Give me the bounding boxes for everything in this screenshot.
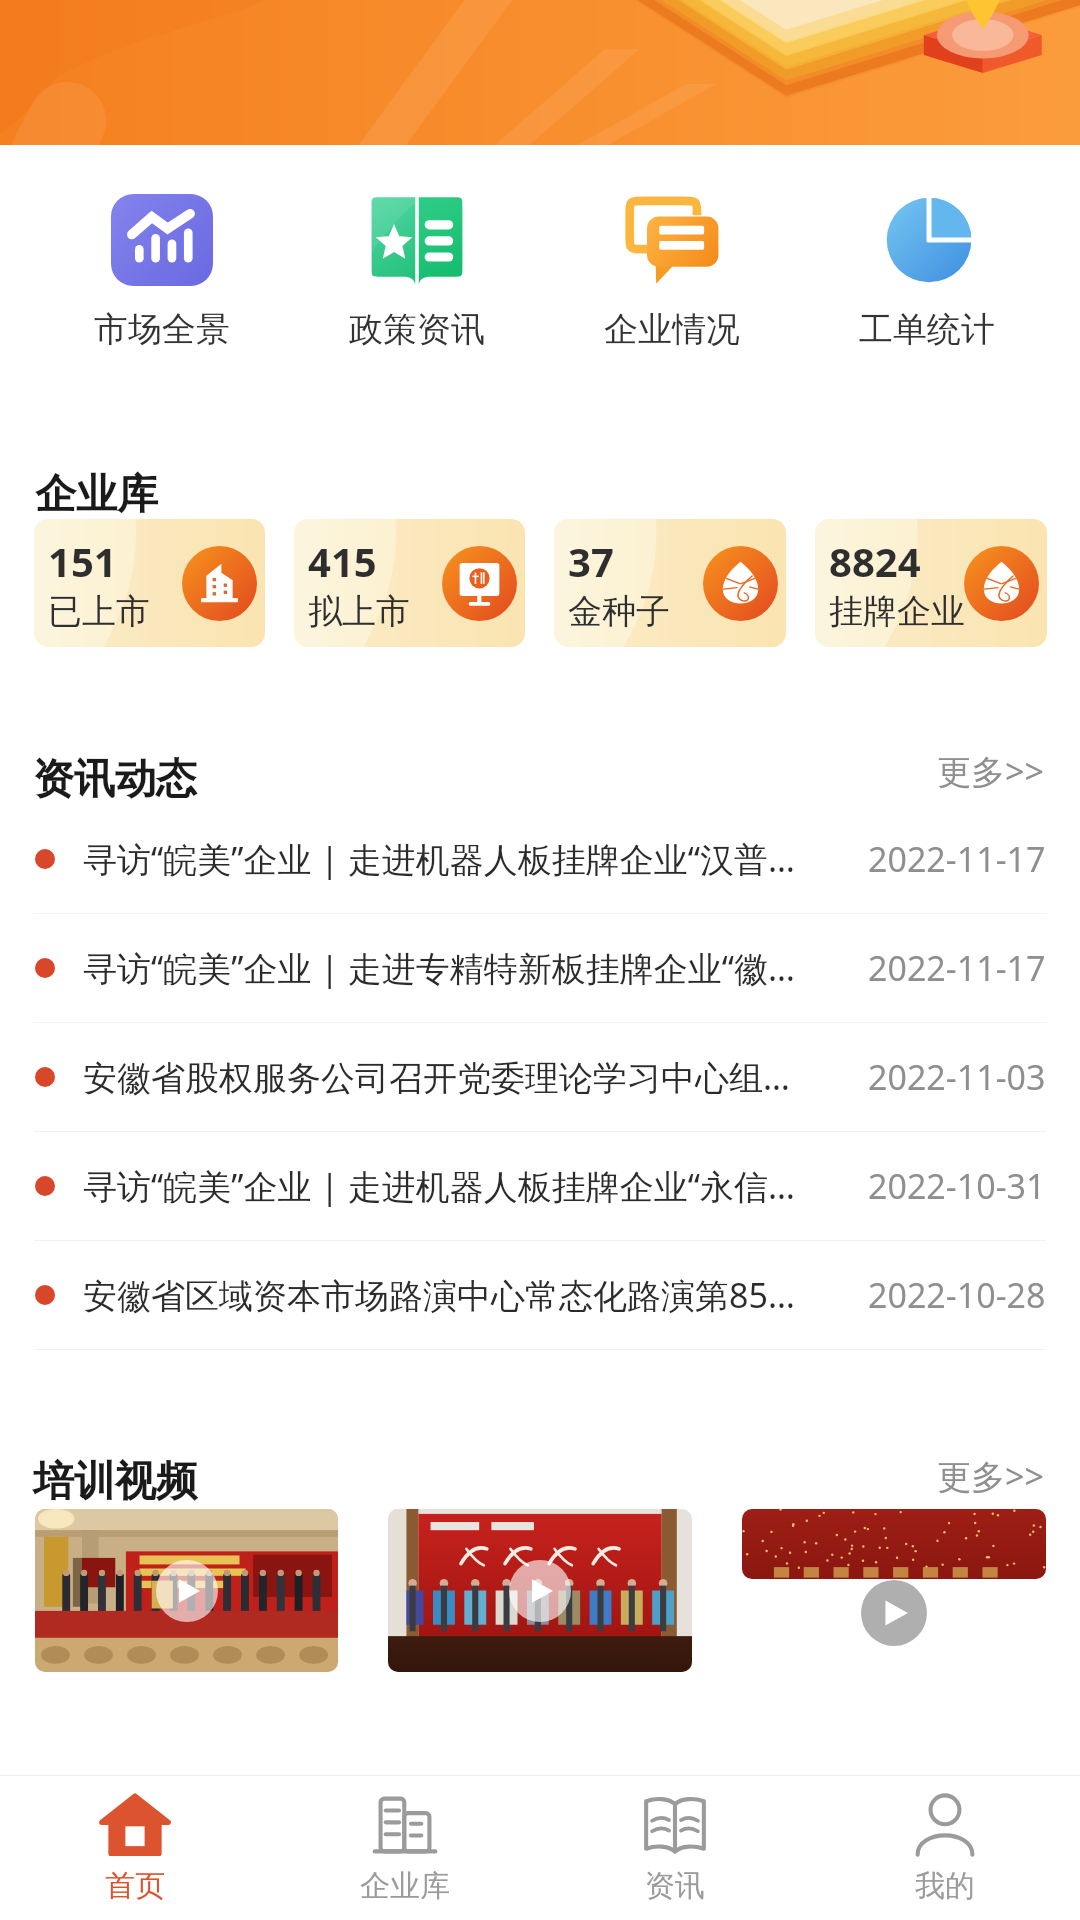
- staticText: 8824: [829, 534, 921, 588]
- button[interactable]: 企业库: [270, 1776, 540, 1920]
- staticText: 415: [308, 534, 377, 588]
- button[interactable]: 寻访“皖美”企业 | 走进机器人板挂牌企业“永信…: [0, 1132, 1080, 1240]
- staticText: 寻访“皖美”企业 | 走进机器人板挂牌企业“永信…: [83, 1163, 854, 1209]
- button[interactable]: 市场全景: [34, 194, 289, 351]
- button[interactable]: Play video: [742, 1509, 1046, 1672]
- button[interactable]: 151: [34, 519, 265, 647]
- staticText: 企业库: [360, 1867, 450, 1905]
- button[interactable]: 寻访“皖美”企业 | 走进机器人板挂牌企业“汉普…: [0, 805, 1080, 913]
- staticText: 37: [568, 534, 614, 588]
- button[interactable]: 8824: [815, 519, 1047, 647]
- staticText: 151: [48, 534, 117, 588]
- staticText: 工单统计: [859, 308, 995, 351]
- staticText: 资讯: [645, 1867, 705, 1905]
- button[interactable]: 37: [554, 519, 786, 647]
- button[interactable]: 安徽省区域资本市场路演中心常态化路演第85…: [0, 1241, 1080, 1349]
- button[interactable]: Play video: [388, 1509, 692, 1672]
- staticText: 寻访“皖美”企业 | 走进机器人板挂牌企业“汉普…: [83, 836, 854, 882]
- staticText: 2022-11-17: [868, 836, 1046, 882]
- button[interactable]: Play video: [35, 1509, 338, 1672]
- staticText: 首页: [105, 1867, 165, 1905]
- button[interactable]: 资讯: [540, 1776, 810, 1920]
- button[interactable]: 更多>>: [917, 728, 1064, 814]
- button[interactable]: 415: [294, 519, 525, 647]
- staticText: 已上市: [48, 590, 150, 633]
- button[interactable]: 更多>>: [917, 1433, 1064, 1519]
- staticText: 我的: [915, 1867, 975, 1905]
- staticText: 资讯动态: [33, 754, 197, 806]
- button[interactable]: 寻访“皖美”企业 | 走进专精特新板挂牌企业“徽…: [0, 914, 1080, 1022]
- staticText: 2022-10-31: [868, 1163, 1046, 1209]
- button[interactable]: 安徽省股权服务公司召开党委理论学习中心组…: [0, 1023, 1080, 1131]
- staticText: 安徽省股权服务公司召开党委理论学习中心组…: [83, 1054, 854, 1100]
- staticText: 2022-11-17: [868, 945, 1046, 991]
- staticText: 政策资讯: [349, 308, 485, 351]
- button[interactable]: 首页: [0, 1776, 270, 1920]
- staticText: 培训视频: [33, 1456, 197, 1508]
- staticText: 挂牌企业: [829, 590, 965, 633]
- staticText: 拟上市: [308, 590, 410, 633]
- button[interactable]: 政策资讯: [289, 194, 544, 351]
- staticText: 企业库: [35, 469, 158, 521]
- staticText: 更多>>: [937, 1453, 1044, 1499]
- staticText: 寻访“皖美”企业 | 走进专精特新板挂牌企业“徽…: [83, 945, 854, 991]
- button[interactable]: 工单统计: [799, 194, 1054, 351]
- staticText: 金种子: [568, 590, 670, 633]
- staticText: 更多>>: [937, 748, 1044, 794]
- button[interactable]: 企业情况: [544, 194, 799, 351]
- staticText: 2022-11-03: [868, 1054, 1046, 1100]
- staticText: 2022-10-28: [868, 1272, 1046, 1318]
- staticText: 企业情况: [604, 308, 740, 351]
- staticText: 市场全景: [94, 308, 230, 351]
- staticText: 安徽省区域资本市场路演中心常态化路演第85…: [83, 1272, 854, 1318]
- button[interactable]: 我的: [810, 1776, 1080, 1920]
